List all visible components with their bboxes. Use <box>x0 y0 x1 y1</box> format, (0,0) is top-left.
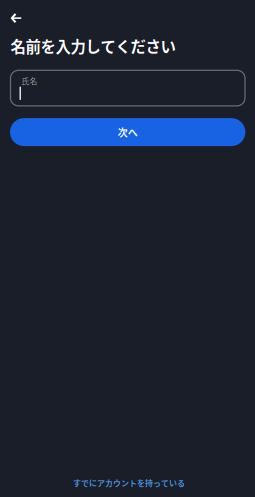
button[interactable]: Back <box>0 0 37 30</box>
staticText: 氏名 <box>21 75 37 86</box>
staticText: 名前を入力してください <box>10 35 175 57</box>
button[interactable]: すでにアカウントを持っている <box>3 472 255 493</box>
staticText: 次へ <box>118 125 138 139</box>
button[interactable]: 次へ <box>10 118 245 146</box>
staticText: すでにアカウントを持っている <box>73 477 185 488</box>
